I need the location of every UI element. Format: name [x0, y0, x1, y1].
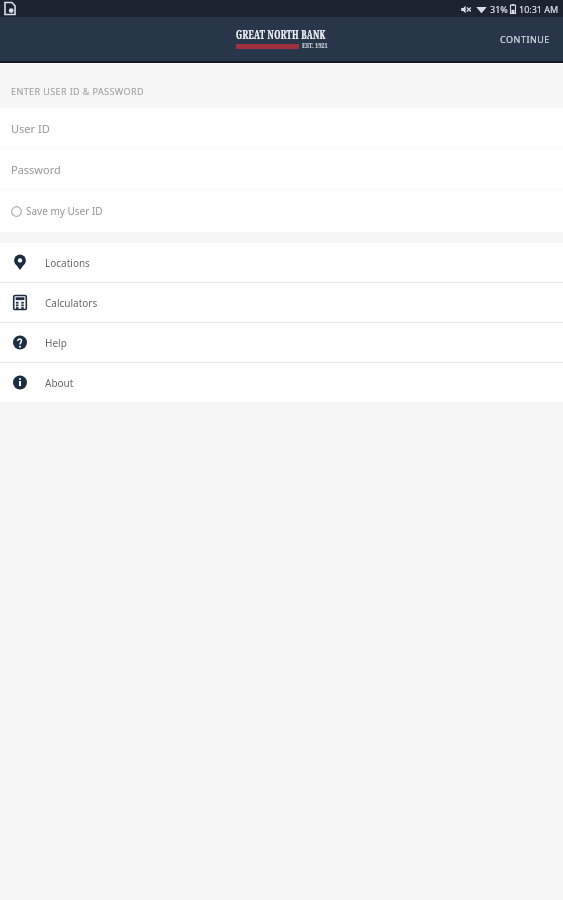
button[interactable]: About [0, 363, 563, 402]
button[interactable]: Help [0, 323, 563, 362]
button[interactable]: User ID [0, 108, 563, 149]
staticText: User ID [11, 121, 50, 136]
staticText: Save my User ID [26, 204, 103, 218]
staticText: Password [11, 162, 61, 177]
staticText: GREAT NORTH BANK [236, 26, 326, 42]
button[interactable]: Calculators [0, 283, 563, 322]
staticText: About [45, 376, 74, 390]
staticText: CONTINUE [500, 33, 550, 45]
other: Wi-Fi [476, 5, 487, 14]
other: Battery [510, 4, 516, 14]
staticText: Locations [45, 256, 90, 270]
other: Sound off [461, 5, 471, 14]
staticText: ENTER USER ID & PASSWORD [11, 85, 144, 97]
button[interactable]: CONTINUE [487, 21, 563, 57]
staticText: 10:31 AM [519, 3, 559, 15]
staticText: Help [45, 336, 67, 350]
button[interactable]: Locations [0, 243, 563, 282]
staticText: EST. 1921 [302, 41, 328, 51]
staticText: Calculators [45, 296, 98, 310]
button[interactable]: Save my User ID [0, 190, 563, 232]
button[interactable]: Password [0, 149, 563, 190]
other: Screenshot saved [4, 2, 16, 15]
staticText: 31% [490, 3, 508, 15]
